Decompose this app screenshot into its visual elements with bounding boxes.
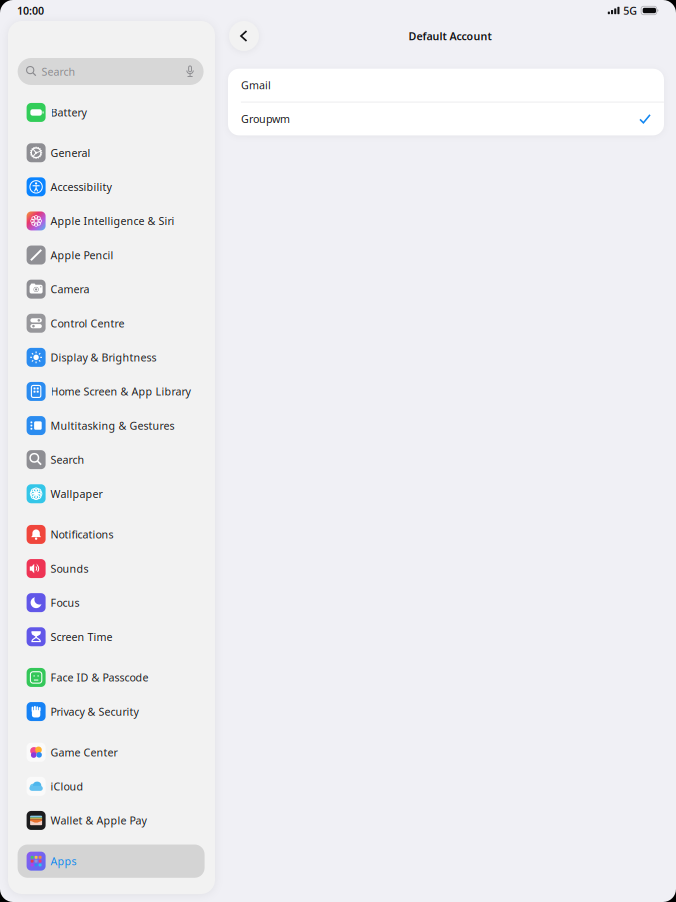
staticText: Apple Intelligence & Siri	[51, 214, 175, 228]
button[interactable]: Home Screen & App Library	[18, 375, 205, 408]
staticText: Control Centre	[51, 316, 125, 330]
button[interactable]: Gmail	[228, 69, 664, 102]
button[interactable]: Notifications	[18, 518, 205, 551]
button[interactable]: General	[18, 136, 205, 169]
staticText: Focus	[51, 596, 80, 610]
staticText: Notifications	[51, 527, 114, 542]
button[interactable]: Privacy & Security	[18, 695, 205, 728]
button[interactable]: Apps	[18, 844, 205, 878]
staticText: Battery	[51, 105, 87, 120]
staticText: Display & Brightness	[51, 350, 157, 364]
staticText: Wallpaper	[51, 487, 103, 501]
button[interactable]: Accessibility	[18, 170, 205, 203]
button[interactable]: Focus	[18, 586, 205, 619]
staticText: Search	[51, 453, 85, 467]
staticText: Multitasking & Gestures	[51, 418, 175, 433]
button[interactable]: Sounds	[18, 552, 205, 585]
staticText: Sounds	[51, 561, 89, 576]
staticText: General	[51, 146, 91, 160]
staticText: Groupwm	[241, 112, 290, 126]
button[interactable]: Control Centre	[18, 307, 205, 340]
button[interactable]: Battery	[18, 96, 205, 129]
staticText: Camera	[51, 282, 90, 296]
staticText: iCloud	[51, 779, 84, 793]
staticText: 5G	[623, 3, 637, 18]
staticText: Apps	[51, 854, 77, 868]
staticText: Default Account	[408, 29, 491, 43]
staticText: Privacy & Security	[51, 704, 139, 719]
staticText: Face ID & Passcode	[51, 670, 149, 685]
button[interactable]: Face ID & Passcode	[18, 661, 205, 694]
button[interactable]: Search	[18, 443, 205, 476]
button[interactable]: Wallpaper	[18, 477, 205, 510]
staticText: Screen Time	[51, 630, 113, 644]
staticText: Search	[42, 64, 76, 79]
button[interactable]: Multitasking & Gestures	[18, 409, 205, 442]
button[interactable]: Camera	[18, 272, 205, 306]
button[interactable]: Screen Time	[18, 620, 205, 653]
staticText: 10:00	[17, 3, 44, 18]
button[interactable]: Apple Pencil	[18, 238, 205, 272]
staticText: Game Center	[51, 745, 118, 759]
button[interactable]: Groupwm	[228, 102, 664, 135]
button[interactable]: Game Center	[18, 736, 205, 769]
staticText: Home Screen & App Library	[51, 384, 191, 399]
button[interactable]: iCloud	[18, 770, 205, 803]
button[interactable]: Wallet & Apple Pay	[18, 804, 205, 837]
staticText: Wallet & Apple Pay	[51, 813, 147, 828]
staticText: Accessibility	[51, 180, 112, 194]
button[interactable]: Display & Brightness	[18, 341, 205, 374]
staticText: Gmail	[241, 78, 271, 92]
button[interactable]: Back	[228, 21, 258, 51]
button[interactable]: Apple Intelligence & Siri	[18, 204, 205, 238]
staticText: Apple Pencil	[51, 248, 114, 262]
